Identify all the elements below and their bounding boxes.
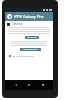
staticText: Do not show again xyxy=(12,54,34,57)
staticText: Setting xyxy=(12,22,22,26)
button[interactable]: Recents xyxy=(40,82,46,88)
button[interactable]: CONTINUE xyxy=(25,36,39,39)
button[interactable]: Do not show again xyxy=(9,54,53,57)
button[interactable]: Back xyxy=(13,82,19,88)
staticText: CONTINUE xyxy=(27,36,38,39)
button[interactable]: Setting xyxy=(7,22,51,26)
button[interactable]: CONNECT NOW xyxy=(20,48,41,51)
staticText: VPN Galaxy Pro xyxy=(14,14,44,19)
button[interactable]: Home xyxy=(26,82,32,88)
staticText: CONNECT NOW xyxy=(23,48,38,51)
button[interactable]: VPN Galaxy Pro xyxy=(5,12,53,21)
